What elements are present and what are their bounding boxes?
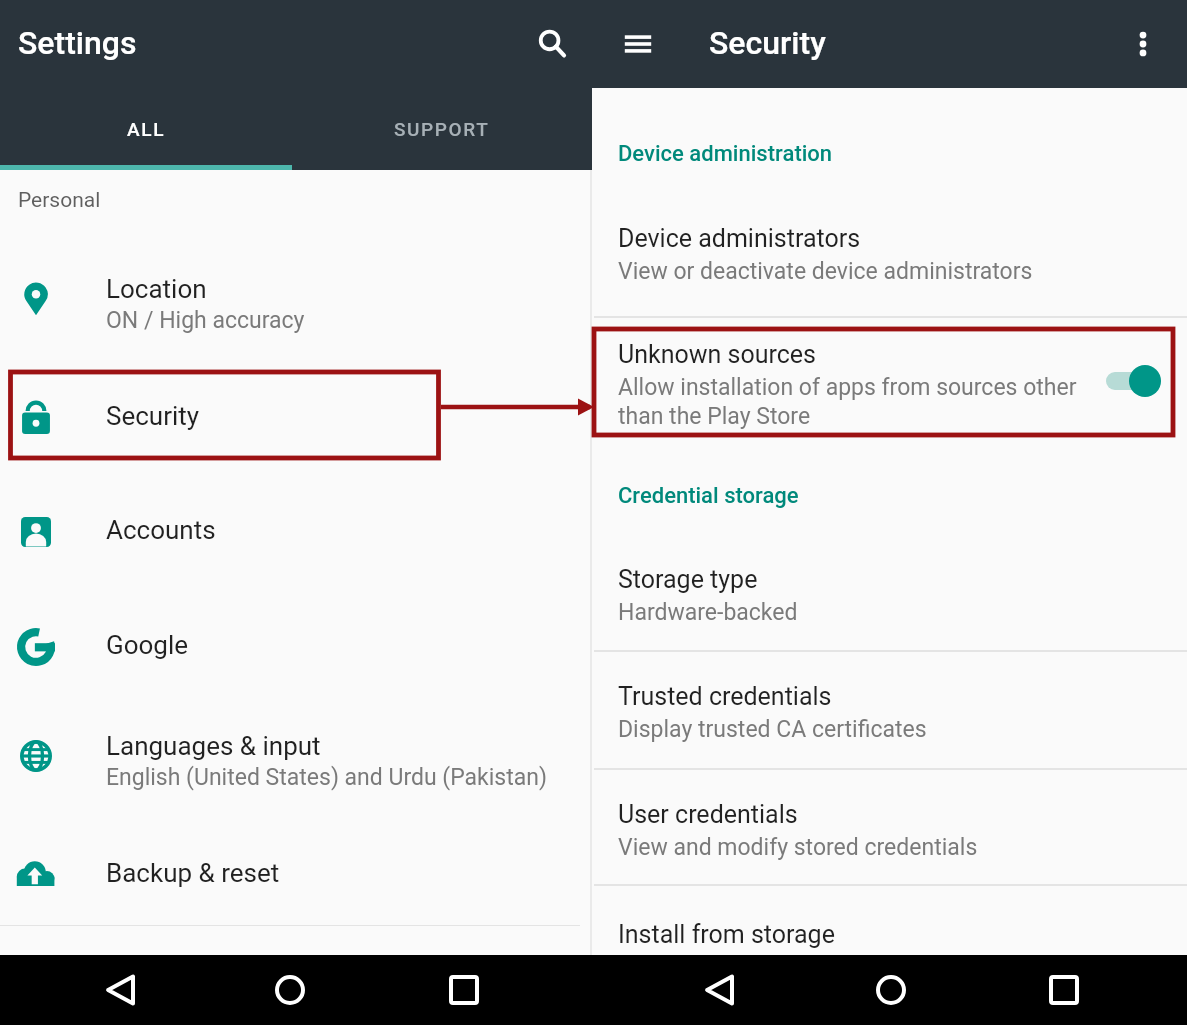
staticText: Settings <box>18 24 137 62</box>
staticText: Storage type <box>618 565 758 594</box>
button[interactable]: Device administrators <box>592 222 1187 306</box>
button[interactable]: Languages & input <box>0 717 592 795</box>
button[interactable]: Home <box>863 962 919 1018</box>
button[interactable]: Recents <box>436 962 492 1018</box>
button[interactable]: Back <box>93 962 149 1018</box>
staticText: Device administrators <box>618 224 861 253</box>
staticText: Display trusted CA certificates <box>618 716 927 743</box>
button[interactable]: Search <box>528 20 576 68</box>
button[interactable]: SUPPORT <box>292 88 592 170</box>
button[interactable]: Menu <box>614 20 662 68</box>
button[interactable]: ALL <box>0 88 292 170</box>
staticText: Allow installation of apps from sources … <box>618 374 1077 430</box>
button[interactable]: Storage type <box>592 563 1187 647</box>
button[interactable]: Install from storage <box>592 918 1187 974</box>
button[interactable]: Recents <box>1036 962 1092 1018</box>
staticText: Location <box>106 274 207 304</box>
staticText: Accounts <box>106 515 216 545</box>
button[interactable]: More options <box>1119 20 1167 68</box>
button[interactable]: Back <box>692 962 748 1018</box>
button[interactable]: Trusted credentials <box>592 680 1187 764</box>
staticText: SUPPORT <box>394 118 490 140</box>
button[interactable]: Home <box>262 962 318 1018</box>
staticText: View and modify stored credentials <box>618 834 978 861</box>
staticText: Security <box>106 401 200 431</box>
button[interactable]: Unknown sources <box>592 338 1187 438</box>
staticText: Device administration <box>618 141 833 167</box>
staticText: View or deactivate device administrators <box>618 258 1033 285</box>
button[interactable]: Location <box>0 260 592 338</box>
staticText: ON / High accuracy <box>106 307 305 334</box>
staticText: Unknown sources <box>618 340 816 369</box>
button[interactable]: User credentials <box>592 798 1187 882</box>
staticText: English (United States) and Urdu (Pakist… <box>106 764 547 791</box>
staticText: Security <box>709 24 826 62</box>
staticText: User credentials <box>618 800 798 829</box>
staticText: Credential storage <box>618 483 799 509</box>
button[interactable]: Google <box>0 612 592 682</box>
staticText: Hardware-backed <box>618 599 798 626</box>
staticText: Personal <box>18 188 101 213</box>
staticText: Languages & input <box>106 731 321 761</box>
staticText: ALL <box>127 118 166 140</box>
staticText: Install from storage <box>618 920 835 949</box>
staticText: Google <box>106 630 189 660</box>
staticText: Trusted credentials <box>618 682 832 711</box>
button[interactable]: Security <box>0 383 592 453</box>
button[interactable]: Accounts <box>0 497 592 567</box>
staticText: Backup & reset <box>106 858 280 888</box>
button[interactable]: Backup & reset <box>0 840 592 910</box>
